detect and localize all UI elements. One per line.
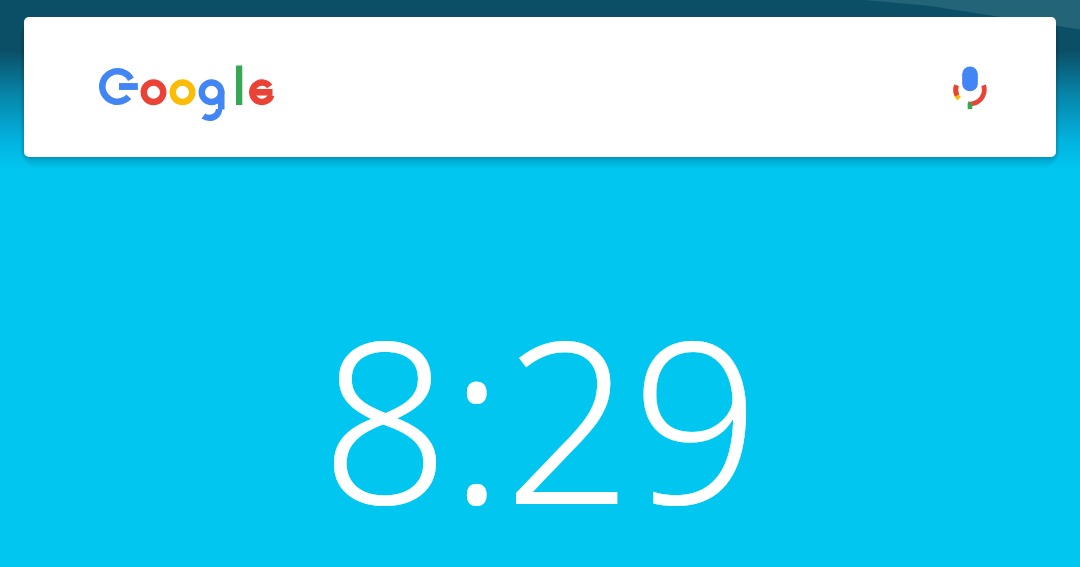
staticText: 8:29 (321, 265, 760, 567)
button[interactable]: Voice search (932, 49, 1008, 125)
button[interactable]: Voice search (24, 17, 1056, 157)
